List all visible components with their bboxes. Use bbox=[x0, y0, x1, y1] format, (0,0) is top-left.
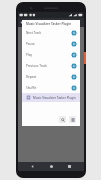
button[interactable]: Play bbox=[22, 49, 80, 60]
staticText: Play bbox=[26, 53, 71, 57]
button[interactable]: Shuffle bbox=[22, 82, 80, 93]
button[interactable]: More options bbox=[75, 18, 84, 27]
staticText: Pause bbox=[26, 42, 71, 46]
staticText: Music Visualizer Tasker Plugin bbox=[27, 21, 66, 25]
button[interactable]: List view bbox=[69, 116, 76, 123]
button[interactable]: Previous Track bbox=[22, 60, 80, 71]
button[interactable]: Repeat bbox=[22, 71, 80, 82]
button[interactable]: Search bbox=[59, 116, 66, 123]
staticText: Next Track bbox=[26, 31, 71, 35]
button[interactable]: Back bbox=[18, 18, 27, 27]
button[interactable]: Next Track bbox=[22, 27, 80, 38]
staticText: Music Visualizer Tasker Plugin bbox=[33, 96, 76, 100]
button[interactable]: Back bbox=[28, 162, 37, 171]
button[interactable]: Home bbox=[47, 162, 56, 171]
staticText: Shuffle bbox=[26, 86, 71, 90]
button[interactable]: Music Visualizer Tasker Plugin bbox=[22, 93, 80, 102]
button[interactable]: Settings bbox=[66, 18, 75, 27]
button[interactable]: Recent apps bbox=[65, 162, 74, 171]
staticText: Previous Track bbox=[26, 64, 71, 68]
staticText: Repeat bbox=[26, 75, 71, 79]
staticText: Music Visualizer Tasker Plugin bbox=[26, 22, 72, 26]
button[interactable]: Pause bbox=[22, 38, 80, 49]
